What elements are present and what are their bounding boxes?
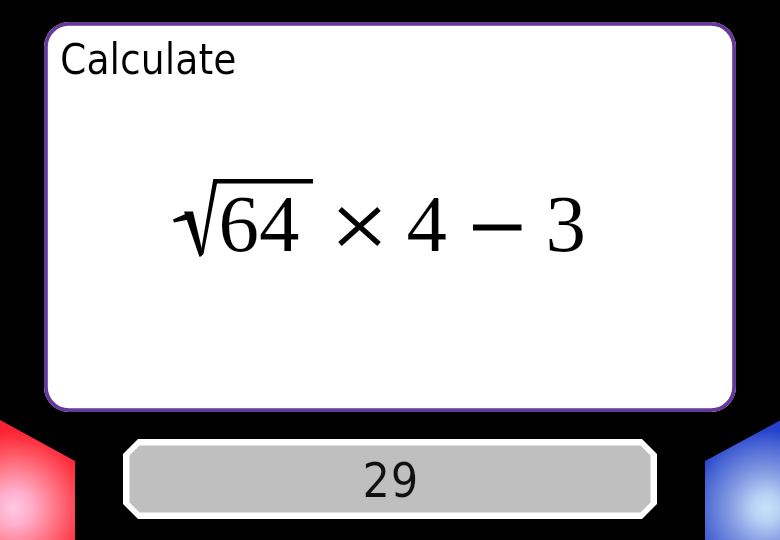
button[interactable]: Answer 29 (123, 439, 657, 519)
button[interactable]: Calculate √64 × 4 − 3 (44, 22, 736, 412)
